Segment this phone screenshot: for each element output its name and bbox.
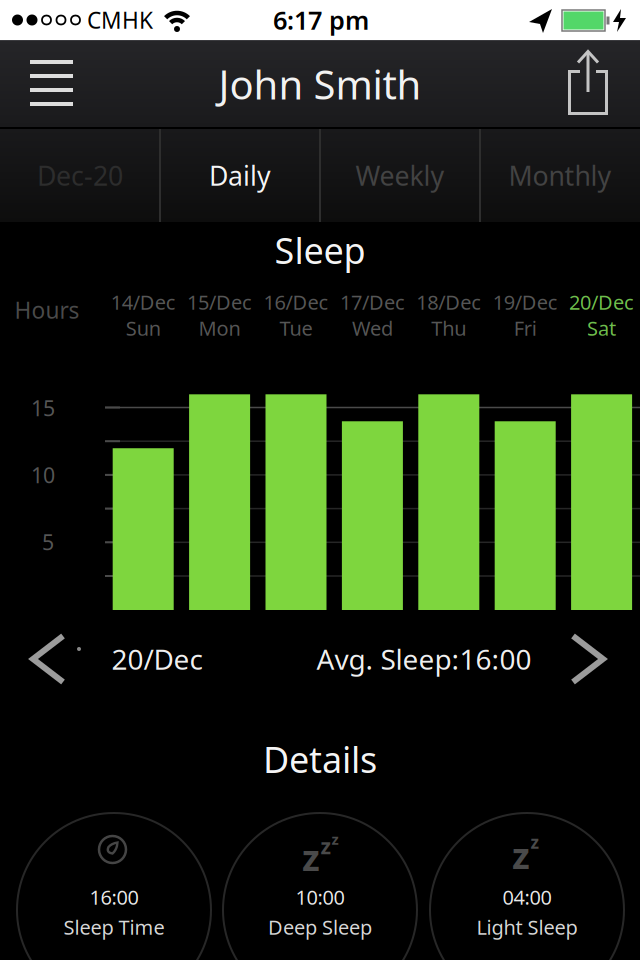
staticText: z [302,833,320,881]
staticText: 19/Dec [493,289,558,315]
staticText: Hours [14,295,79,325]
staticText: Avg. Sleep:16:00 [316,640,531,678]
staticText: 6:17 pm [273,3,369,37]
staticText: z [512,831,530,879]
staticText: 15/Dec [187,289,252,315]
staticText: John Smith [218,57,421,110]
staticText: Sleep Time [63,914,164,940]
button[interactable]: Dec-20 [1,129,159,222]
staticText: Fri [514,315,537,341]
staticText: Tue [279,315,312,341]
staticText: 15 [31,394,55,422]
staticText: Thu [431,315,466,341]
button[interactable]: Next day [553,619,623,699]
staticText: Light Sleep [476,914,577,940]
staticText: Daily [209,158,271,193]
staticText: z [530,830,539,853]
staticText: Sun [126,315,161,341]
staticText: Deep Sleep [268,914,372,940]
button[interactable]: Menu [13,40,89,126]
staticText: 20/Dec [569,289,634,315]
staticText: CMHK [87,5,153,35]
staticText: Wed [352,315,393,341]
button[interactable]: Previous day [13,619,83,699]
button[interactable]: Share [550,41,626,127]
staticText: Dec-20 [37,158,123,193]
staticText: 16/Dec [263,289,328,315]
staticText: Mon [199,315,241,341]
staticText: 18/Dec [416,289,481,315]
staticText: Monthly [508,158,611,193]
staticText: Sat [587,315,616,341]
staticText: 10:00 [295,884,344,910]
staticText: 14/Dec [111,289,176,315]
staticText: 17/Dec [340,289,405,315]
button[interactable]: Monthly [481,129,639,222]
button[interactable]: Daily [161,129,319,222]
staticText: 5 [42,528,54,556]
staticText: 04:00 [502,884,551,910]
staticText: Weekly [355,158,444,193]
staticText: z [331,829,338,849]
staticText: z [320,832,331,860]
button[interactable]: Weekly [321,129,479,222]
staticText: 16:00 [89,884,138,910]
staticText: 20/Dec [111,640,202,678]
staticText: 10 [31,461,55,489]
staticText: Details [263,735,377,783]
staticText: Sleep [274,226,365,274]
